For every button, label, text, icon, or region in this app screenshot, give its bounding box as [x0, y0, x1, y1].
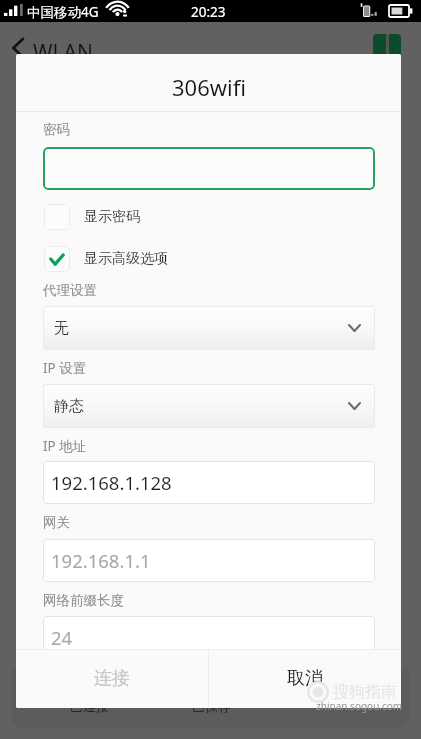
staticText: 网关	[43, 514, 70, 531]
staticText: 搜狗指南	[333, 682, 397, 702]
staticText: 已连接	[70, 698, 109, 714]
staticText: zhinan.sogou.com	[316, 699, 403, 713]
button[interactable]: 无	[43, 306, 375, 350]
staticText: 取消	[287, 667, 323, 690]
staticText: 代理设置	[43, 282, 97, 299]
button[interactable]: 静态	[43, 384, 375, 428]
button[interactable]: 192.168.1.128	[43, 461, 375, 504]
button[interactable]: Back	[12, 37, 24, 59]
staticText: 中国移动4G	[27, 3, 99, 21]
staticText: 306wifi	[172, 72, 246, 102]
staticText: 静态	[54, 397, 84, 416]
staticText: 192.168.1.1	[51, 548, 151, 573]
staticText: 已保存	[192, 698, 231, 714]
staticText: 显示高级选项	[84, 250, 168, 268]
staticText: 密码	[43, 121, 70, 138]
staticText: 20:23	[191, 3, 226, 21]
button[interactable]: 24	[43, 616, 375, 659]
staticText: 192.168.1.128	[51, 470, 172, 495]
button[interactable]: 连接	[16, 649, 208, 708]
staticText: 显示密码	[84, 208, 140, 226]
staticText: IP 地址	[43, 437, 87, 455]
button[interactable]	[43, 147, 375, 190]
staticText: 24	[51, 625, 73, 650]
staticText: 连接	[94, 667, 130, 690]
button[interactable]: 取消	[209, 649, 401, 708]
button[interactable]: 显示密码	[44, 204, 244, 230]
button[interactable]: WLAN toggle	[373, 34, 401, 56]
button[interactable]: 192.168.1.1	[43, 539, 375, 582]
staticText: 无	[54, 319, 69, 338]
staticText: WLAN	[33, 38, 93, 67]
staticText: IP 设置	[43, 359, 87, 377]
staticText: 网络前缀长度	[43, 592, 124, 609]
button[interactable]: 显示高级选项	[44, 246, 244, 272]
